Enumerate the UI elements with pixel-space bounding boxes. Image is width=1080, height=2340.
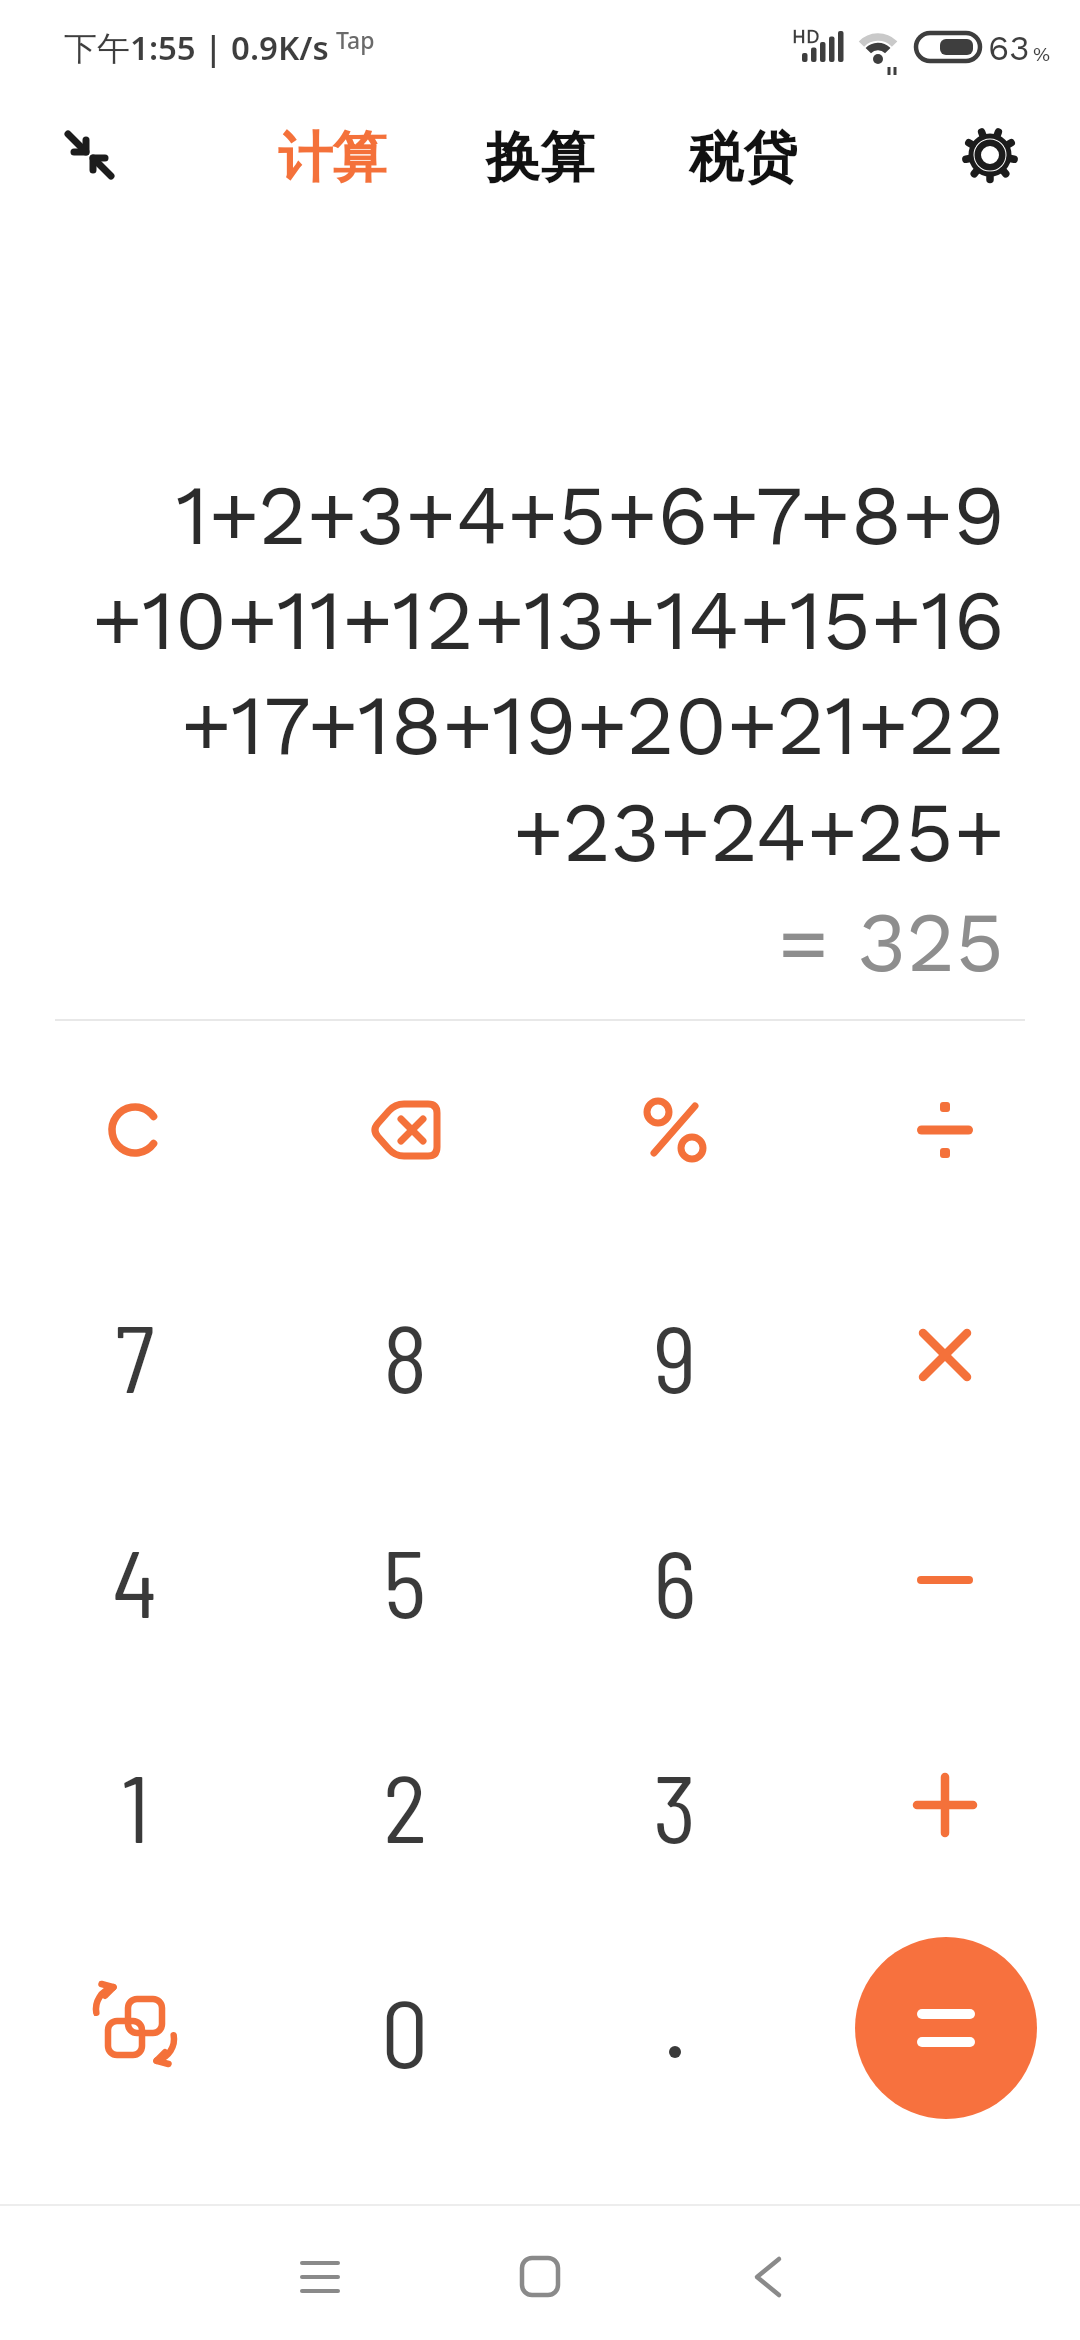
staticText: HD	[792, 25, 820, 47]
button[interactable]: 换算	[430, 103, 650, 213]
button[interactable]: 4	[0, 1500, 285, 1660]
staticText: 1	[121, 1749, 150, 1862]
staticText: %	[1033, 42, 1051, 65]
button[interactable]	[290, 1035, 520, 1225]
button[interactable]: 9	[525, 1275, 825, 1435]
button[interactable]	[20, 1035, 250, 1225]
button[interactable]	[855, 1937, 1037, 2119]
staticText: 6	[653, 1524, 697, 1637]
staticText: 5	[383, 1524, 427, 1637]
staticText: +10+11+12+13+14+15+16	[92, 571, 1005, 670]
button[interactable]	[728, 2237, 808, 2317]
button[interactable]: 5	[255, 1500, 555, 1660]
staticText: +17+18+19+20+21+22	[181, 676, 1005, 775]
button[interactable]: 6	[525, 1500, 825, 1660]
button[interactable]	[830, 1035, 1060, 1225]
staticText: = 325	[778, 893, 1005, 992]
button[interactable]: 1	[0, 1725, 285, 1885]
staticText: +23+24+25+	[513, 783, 1005, 882]
staticText: 1+2+3+4+5+6+7+8+9	[176, 466, 1005, 565]
staticText: 0	[381, 1974, 429, 2087]
button[interactable]	[830, 1485, 1060, 1675]
button[interactable]: 7	[0, 1275, 285, 1435]
button[interactable]	[55, 121, 123, 189]
staticText: Tap	[336, 24, 375, 55]
button[interactable]	[280, 2237, 360, 2317]
staticText: 9	[653, 1299, 697, 1412]
staticText: 税贷	[689, 124, 797, 192]
staticText: 换算	[486, 124, 594, 192]
button[interactable]: 8	[255, 1275, 555, 1435]
button[interactable]	[500, 2237, 580, 2317]
button[interactable]: 计算	[222, 103, 442, 213]
button[interactable]	[20, 1929, 250, 2119]
staticText: 3	[653, 1749, 697, 1862]
button[interactable]: 2	[255, 1725, 555, 1885]
button[interactable]: 0	[255, 1950, 555, 2110]
staticText: 计算	[278, 124, 386, 192]
staticText: 2	[383, 1749, 428, 1862]
button[interactable]: 3	[525, 1725, 825, 1885]
button[interactable]	[958, 123, 1022, 187]
button[interactable]	[560, 1935, 790, 2125]
staticText: 8	[383, 1299, 428, 1412]
button[interactable]	[830, 1260, 1060, 1450]
staticText: 7	[115, 1299, 155, 1412]
button[interactable]	[830, 1710, 1060, 1900]
button[interactable]: 税贷	[633, 103, 853, 213]
button[interactable]	[560, 1035, 790, 1225]
staticText: 下午1:55 | 0.9K/s	[64, 25, 329, 70]
staticText: 4	[112, 1524, 158, 1637]
staticText: 63	[988, 27, 1030, 68]
